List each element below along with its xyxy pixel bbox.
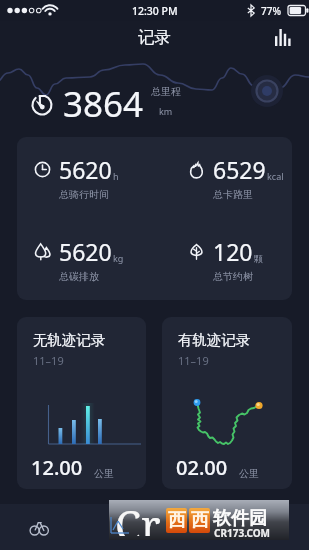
button[interactable]: Ride (0, 504, 78, 550)
button[interactable]: Statistics (269, 23, 297, 51)
staticText: 有轨迹记录 (178, 331, 251, 349)
staticText: 西 (168, 509, 186, 532)
staticText: km (159, 105, 173, 117)
button[interactable]: 有轨迹记录 (162, 317, 292, 489)
staticText: 77% (261, 4, 281, 18)
staticText: 无轨迹记录 (33, 331, 106, 349)
staticText: kg (113, 252, 124, 264)
staticText: CR173.COM (214, 526, 271, 540)
staticText: 6529 (213, 154, 266, 185)
staticText: 总卡路里 (213, 188, 253, 201)
staticText: h (113, 170, 119, 182)
staticText: Cr (115, 496, 161, 536)
button[interactable]: 5620 (17, 137, 292, 300)
staticText: 120 (213, 236, 253, 267)
button[interactable]: Records (78, 504, 155, 550)
staticText: 12.00 (31, 454, 83, 481)
staticText: 总节约树 (213, 270, 253, 283)
staticText: 3864 (63, 80, 144, 128)
staticText: 总碳排放 (59, 270, 99, 283)
button[interactable]: 无轨迹记录 (17, 317, 146, 489)
staticText: kcal (267, 170, 284, 182)
staticText: 5620 (59, 154, 112, 185)
staticText: 记录 (138, 27, 171, 48)
staticText: 公里 (239, 467, 259, 480)
staticText: 总骑行时间 (59, 188, 109, 201)
staticText: 12:30 PM (132, 4, 178, 18)
staticText: 11–19 (178, 353, 209, 368)
staticText: 西 (191, 509, 209, 532)
button[interactable]: Discover (155, 504, 232, 550)
staticText: 颗 (254, 253, 263, 264)
staticText: 总里程 (151, 85, 181, 98)
staticText: 02.00 (176, 454, 228, 481)
button[interactable]: Profile (232, 504, 309, 550)
staticText: 5620 (59, 236, 112, 267)
staticText: 11–19 (33, 353, 64, 368)
staticText: 公里 (94, 467, 114, 480)
staticText: 软件园 (213, 507, 267, 530)
